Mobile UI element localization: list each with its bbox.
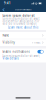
staticText: Create From Template	[14, 9, 31, 11]
button[interactable]: Back	[1, 8, 6, 12]
button[interactable]: Learn more about this	[2, 26, 44, 29]
staticText: Lorem ipsum dolor sit amet,	[2, 54, 40, 58]
staticText: Visibility	[2, 41, 14, 44]
staticText: Lorem ipsum dolor sit	[2, 14, 34, 17]
staticText: Enable notifications	[2, 50, 29, 53]
staticText: sed do eiusmod tempor.	[2, 22, 37, 25]
button[interactable]: Visibility	[0, 39, 46, 46]
staticText: consectetur adipiscing elit	[2, 19, 39, 23]
button[interactable]: View details	[2, 57, 44, 59]
staticText: 9:41	[4, 1, 11, 5]
staticText: View details	[2, 57, 18, 60]
staticText: Private	[32, 41, 41, 44]
button[interactable]: Name	[0, 32, 46, 39]
staticText: Lorem ipsum dolor sit amet,	[2, 17, 40, 20]
staticText: Name	[2, 34, 9, 37]
staticText: Learn more about this	[8, 26, 38, 29]
button[interactable]: Enable notifications	[0, 48, 46, 55]
